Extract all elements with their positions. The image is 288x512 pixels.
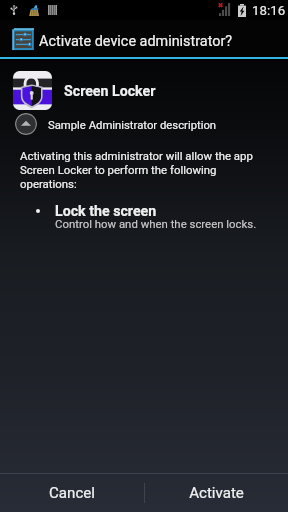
button[interactable]: Collapse description: [0, 108, 288, 138]
other: Collapse description: [15, 113, 37, 135]
staticText: Lock the screen: [55, 203, 157, 220]
button[interactable]: Activate: [144, 473, 288, 512]
staticText: Screen Locker: [64, 83, 156, 100]
staticText: 18:16: [252, 3, 286, 19]
staticText: Activate: [189, 484, 244, 502]
staticText: Activate device administrator?: [39, 33, 233, 50]
button[interactable]: Cancel: [0, 473, 144, 512]
staticText: Sample Administrator description: [48, 119, 217, 132]
staticText: Control how and when the screen locks.: [55, 217, 257, 230]
staticText: Activating this administrator will allow…: [20, 149, 254, 191]
staticText: Cancel: [49, 484, 95, 502]
